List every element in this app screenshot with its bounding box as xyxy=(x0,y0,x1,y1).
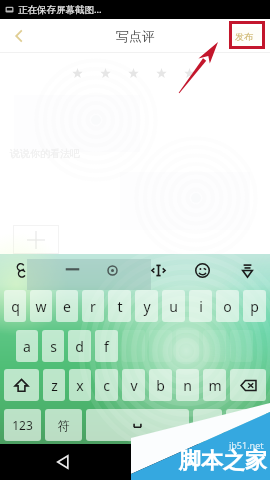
button[interactable]: w xyxy=(30,290,52,322)
button[interactable] xyxy=(122,330,145,362)
staticText: 正在保存屏幕截图... xyxy=(18,3,102,16)
button[interactable] xyxy=(230,330,253,362)
button[interactable]: i xyxy=(189,290,212,322)
staticText: a xyxy=(23,337,31,356)
button[interactable]: Settings xyxy=(99,257,125,283)
staticText: c xyxy=(103,376,110,395)
staticText: f xyxy=(104,337,109,356)
button[interactable]: n xyxy=(176,369,199,401)
button[interactable]: x xyxy=(69,369,91,401)
staticText: 写点评 xyxy=(116,28,155,44)
button[interactable]: Emoji xyxy=(189,257,215,283)
staticText: 脚本之家 xyxy=(179,447,267,475)
staticText: x xyxy=(76,376,84,395)
button[interactable]: Delete xyxy=(230,369,266,401)
staticText: e xyxy=(63,297,71,316)
staticText: y xyxy=(143,297,151,316)
button[interactable]: Back xyxy=(52,451,74,473)
button[interactable]: Move cursor xyxy=(145,257,171,283)
staticText: r xyxy=(90,297,96,316)
button[interactable]: Rate 5 stars xyxy=(184,68,195,79)
button[interactable]: u xyxy=(162,290,185,322)
button[interactable]: Rate 4 stars xyxy=(156,68,167,79)
button[interactable] xyxy=(149,330,172,362)
staticText: z xyxy=(51,376,58,395)
button[interactable]: Space xyxy=(86,409,189,441)
button[interactable]: s xyxy=(42,330,64,362)
button[interactable]: Input method xyxy=(8,257,34,283)
button[interactable]: c xyxy=(95,369,118,401)
button[interactable]: b xyxy=(149,369,172,401)
staticText: m xyxy=(208,376,222,395)
staticText: d xyxy=(75,337,84,356)
button[interactable]: Enter xyxy=(226,409,266,441)
button[interactable]: Shift xyxy=(4,369,39,401)
button[interactable]: y xyxy=(135,290,158,322)
staticText: b xyxy=(156,376,165,395)
button[interactable]: d xyxy=(68,330,91,362)
staticText: q xyxy=(11,297,20,316)
button[interactable]: 123 xyxy=(4,409,41,441)
button[interactable]: f xyxy=(95,330,118,362)
staticText: s xyxy=(50,337,57,356)
button[interactable]: Back xyxy=(9,26,29,46)
button[interactable] xyxy=(203,330,226,362)
staticText: jb51.net xyxy=(229,439,264,451)
button[interactable]: Text tools xyxy=(59,257,85,283)
button[interactable]: Rate 2 stars xyxy=(100,68,111,79)
button[interactable]: p xyxy=(243,290,266,322)
staticText: n xyxy=(183,376,192,395)
staticText: o xyxy=(223,297,232,316)
staticText: u xyxy=(169,297,178,316)
button[interactable]: a xyxy=(16,330,38,362)
button[interactable] xyxy=(176,330,199,362)
button[interactable]: q xyxy=(4,290,26,322)
button[interactable]: z xyxy=(43,369,65,401)
button[interactable]: v xyxy=(122,369,145,401)
staticText: i xyxy=(199,297,203,316)
button[interactable]: e xyxy=(56,290,78,322)
staticText: . xyxy=(206,417,210,433)
button[interactable]: Rate 3 stars xyxy=(128,68,139,79)
staticText: p xyxy=(250,297,259,316)
button[interactable]: 发布 xyxy=(228,27,260,46)
button[interactable]: 符 xyxy=(45,409,82,441)
button[interactable]: m xyxy=(203,369,226,401)
staticText: w xyxy=(35,297,47,316)
staticText: 123 xyxy=(12,417,33,433)
staticText: 说说你的看法吧 xyxy=(10,147,80,160)
button[interactable]: o xyxy=(216,290,239,322)
button[interactable]: . xyxy=(193,409,222,441)
staticText: v xyxy=(130,376,138,395)
button[interactable]: t xyxy=(108,290,131,322)
button[interactable]: r xyxy=(82,290,104,322)
button[interactable]: Rate 1 stars xyxy=(72,68,83,79)
staticText: 符 xyxy=(58,418,70,433)
staticText: t xyxy=(117,297,123,316)
button[interactable]: Hide keyboard xyxy=(234,257,260,283)
button[interactable]: Add photo xyxy=(13,225,59,254)
staticText: 发布 xyxy=(235,31,253,42)
